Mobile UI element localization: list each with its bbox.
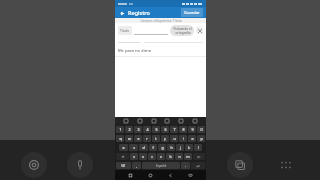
button[interactable]: 7 bbox=[170, 126, 178, 133]
staticText: 0 bbox=[200, 127, 203, 132]
button[interactable]: i bbox=[179, 135, 187, 142]
staticText: !#1 bbox=[121, 164, 126, 168]
staticText: m bbox=[186, 154, 190, 159]
button[interactable]: Enter bbox=[191, 162, 205, 169]
button[interactable]: Back bbox=[118, 9, 126, 17]
staticText: w bbox=[128, 136, 131, 141]
button[interactable]: 6 bbox=[161, 126, 169, 133]
button[interactable]: k bbox=[185, 144, 193, 151]
staticText: 3 bbox=[137, 127, 140, 132]
staticText: , bbox=[136, 163, 137, 168]
button[interactable]: , bbox=[132, 162, 141, 169]
staticText: 1 bbox=[119, 127, 122, 132]
button[interactable]: Close bbox=[196, 27, 203, 34]
button[interactable]: v bbox=[157, 153, 165, 160]
button[interactable]: Keyboard tool 6 bbox=[192, 118, 198, 124]
button[interactable]: 1 bbox=[116, 126, 124, 133]
button[interactable]: y bbox=[161, 135, 169, 142]
button[interactable]: More options bbox=[273, 152, 299, 178]
staticText: b bbox=[169, 154, 172, 159]
staticText: z bbox=[133, 154, 135, 159]
button[interactable]: 0 bbox=[197, 126, 205, 133]
button[interactable]: Camera bbox=[21, 152, 47, 178]
staticText: . bbox=[185, 163, 186, 168]
button[interactable]: Back bbox=[166, 171, 175, 180]
button[interactable]: . bbox=[181, 162, 190, 169]
button[interactable]: 5 bbox=[152, 126, 160, 133]
button[interactable]: z bbox=[130, 153, 138, 160]
button[interactable]: r bbox=[143, 135, 151, 142]
button[interactable]: Hide keyboard bbox=[186, 171, 195, 180]
button[interactable]: Keyboard tool 1 bbox=[123, 118, 129, 124]
button[interactable]: Keyboard tool 2 bbox=[137, 118, 143, 124]
button[interactable]: Backspace bbox=[193, 153, 205, 160]
staticText: y bbox=[164, 136, 166, 141]
staticText: ortografia bbox=[175, 31, 191, 35]
staticText: 2 bbox=[128, 127, 131, 132]
staticText: 6 bbox=[164, 127, 167, 132]
staticText: f bbox=[152, 145, 154, 150]
button[interactable]: Recents bbox=[126, 171, 135, 180]
button[interactable]: Home bbox=[146, 171, 155, 180]
button[interactable]: Keyboard tool 4 bbox=[164, 118, 170, 124]
button[interactable]: g bbox=[158, 144, 166, 151]
staticText: q bbox=[119, 136, 122, 141]
staticText: r bbox=[146, 136, 148, 141]
button[interactable]: h bbox=[167, 144, 175, 151]
button[interactable]: t bbox=[152, 135, 160, 142]
staticText: Campos obligatorios: Titulo bbox=[140, 19, 182, 23]
button[interactable]: q bbox=[116, 135, 124, 142]
staticText: 7 bbox=[173, 127, 176, 132]
button[interactable] bbox=[134, 26, 168, 35]
button[interactable]: o bbox=[188, 135, 196, 142]
button[interactable]: Keyboard tool 3 bbox=[151, 118, 157, 124]
staticText: Guardar bbox=[184, 10, 200, 15]
button[interactable]: s bbox=[129, 144, 138, 151]
staticText: 4 bbox=[146, 127, 149, 132]
button[interactable]: Microphone bbox=[67, 152, 93, 178]
staticText: p bbox=[200, 136, 203, 141]
button[interactable]: Screenshot bbox=[227, 152, 253, 178]
button[interactable]: 4 bbox=[143, 126, 151, 133]
button[interactable]: 3 bbox=[134, 126, 142, 133]
button[interactable]: 2 bbox=[125, 126, 133, 133]
button[interactable]: c bbox=[148, 153, 156, 160]
staticText: a bbox=[122, 145, 125, 150]
button[interactable]: j bbox=[176, 144, 184, 151]
button[interactable]: n bbox=[175, 153, 183, 160]
button[interactable]: u bbox=[170, 135, 178, 142]
staticText: k bbox=[188, 145, 190, 150]
button[interactable]: 8 bbox=[179, 126, 187, 133]
button[interactable]: f bbox=[149, 144, 157, 151]
button[interactable]: Mc para no dime bbox=[115, 46, 206, 56]
button[interactable]: l bbox=[194, 144, 202, 151]
button[interactable]: 9 bbox=[188, 126, 196, 133]
button[interactable]: e bbox=[134, 135, 142, 142]
button[interactable]: p bbox=[197, 135, 205, 142]
staticText: Probando el bbox=[173, 27, 192, 31]
staticText: Titulo bbox=[120, 28, 130, 33]
button[interactable]: d bbox=[139, 144, 148, 151]
staticText: t bbox=[155, 136, 157, 141]
button[interactable]: b bbox=[166, 153, 174, 160]
button[interactable]: Probando el bbox=[170, 25, 194, 36]
button[interactable]: Space bbox=[142, 162, 180, 169]
button[interactable]: Titulo bbox=[118, 26, 132, 35]
staticText: j bbox=[180, 145, 181, 150]
staticText: Mc para no dime bbox=[118, 48, 152, 54]
button[interactable]: Shift bbox=[116, 153, 129, 160]
button[interactable]: w bbox=[125, 135, 133, 142]
staticText: Español bbox=[156, 164, 167, 168]
staticText: x bbox=[142, 154, 144, 159]
staticText: d bbox=[142, 145, 145, 150]
staticText: n bbox=[178, 154, 181, 159]
staticText: v bbox=[160, 154, 162, 159]
button[interactable]: Keyboard tool 5 bbox=[178, 118, 184, 124]
staticText: i bbox=[183, 136, 184, 141]
button[interactable]: a bbox=[119, 144, 128, 151]
button[interactable]: x bbox=[139, 153, 147, 160]
staticText: s bbox=[133, 145, 135, 150]
button[interactable]: m bbox=[184, 153, 192, 160]
button[interactable]: !#1 bbox=[116, 162, 131, 169]
button[interactable]: Guardar bbox=[181, 8, 203, 17]
